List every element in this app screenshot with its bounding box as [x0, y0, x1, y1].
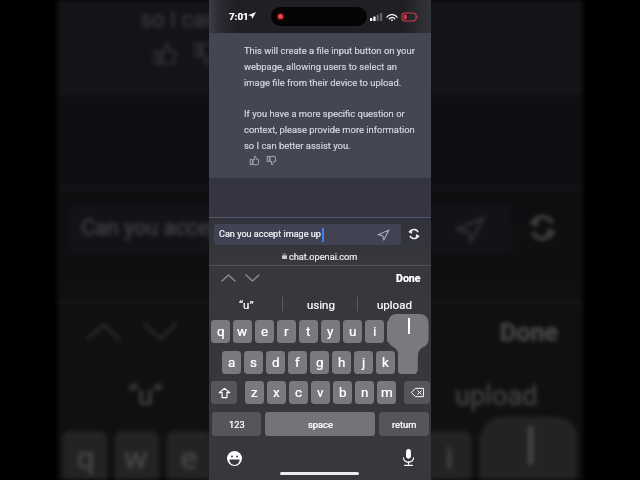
staticText: Can you accept image up	[81, 216, 322, 242]
button[interactable]: using	[247, 360, 398, 429]
button[interactable]: Shift	[211, 381, 237, 404]
staticText: i	[445, 441, 455, 478]
button[interactable]: Dictation	[398, 447, 418, 467]
button[interactable]: Thumbs up	[246, 152, 262, 168]
button[interactable]: m	[377, 381, 396, 404]
button[interactable]: p	[409, 320, 428, 343]
staticText: space	[308, 419, 333, 430]
button[interactable]: “u”	[214, 290, 278, 319]
button[interactable]: h	[332, 351, 351, 374]
staticText: a	[228, 355, 236, 371]
button[interactable]: c	[289, 381, 308, 404]
button[interactable]: g	[310, 351, 329, 374]
button[interactable]: u	[374, 431, 419, 480]
button[interactable]: r	[277, 320, 296, 343]
button[interactable]: space	[265, 412, 375, 436]
button[interactable]: t	[270, 431, 315, 480]
button[interactable]: Reload page	[516, 202, 569, 254]
staticText: z	[251, 385, 258, 401]
staticText: y	[327, 324, 334, 340]
button[interactable]: k	[376, 351, 395, 374]
staticText: return	[392, 419, 417, 430]
button[interactable]: Reload page	[403, 223, 425, 245]
button[interactable]: “u”	[69, 360, 221, 429]
staticText: h	[338, 355, 346, 371]
button[interactable]: v	[311, 381, 330, 404]
staticText: w	[124, 441, 150, 478]
button[interactable]: e	[166, 431, 211, 480]
staticText: webpage, allowing users to select an	[244, 61, 398, 72]
button[interactable]: Done	[390, 266, 426, 289]
staticText: g	[316, 355, 324, 371]
button[interactable]: e	[255, 320, 274, 343]
button[interactable]: i	[427, 431, 472, 480]
button[interactable]: w	[233, 320, 252, 343]
button[interactable]: j	[354, 351, 373, 374]
staticText: q	[217, 324, 225, 340]
button[interactable]: Next field	[239, 267, 265, 288]
button[interactable]: upload	[362, 290, 426, 319]
staticText: chat.openai.com	[289, 251, 358, 262]
button[interactable]: o	[479, 412, 580, 480]
button[interactable]: o	[387, 312, 430, 375]
staticText: q	[76, 441, 95, 478]
staticText: t	[287, 441, 299, 478]
staticText: v	[317, 385, 324, 401]
staticText: b	[339, 385, 347, 401]
button[interactable]: Next field	[128, 306, 190, 355]
staticText: This will create a file input button on …	[244, 45, 415, 56]
button[interactable]: t	[299, 320, 318, 343]
staticText: m	[381, 385, 393, 401]
button[interactable]: Previous field	[215, 267, 241, 288]
button[interactable]: z	[245, 381, 264, 404]
button[interactable]: Emoji keyboard	[225, 449, 243, 467]
button[interactable]: p	[531, 431, 576, 480]
staticText: so I can better assist you.	[244, 140, 351, 151]
button[interactable]: x	[267, 381, 286, 404]
button[interactable]: Can you accept image up	[214, 224, 401, 245]
button[interactable]: b	[333, 381, 352, 404]
button[interactable]: upload	[419, 360, 571, 429]
button[interactable]: Backspace	[404, 381, 430, 404]
button[interactable]: w	[114, 431, 159, 480]
button[interactable]: o	[387, 320, 406, 343]
button[interactable]: y	[321, 320, 340, 343]
button[interactable]: a	[222, 351, 241, 374]
button[interactable]: s	[244, 351, 263, 374]
button[interactable]: Thumbs down	[263, 152, 279, 168]
button[interactable]: q	[62, 431, 107, 480]
staticText: image file from their device to upload.	[244, 77, 402, 88]
button[interactable]: r	[218, 431, 263, 480]
staticText: y	[337, 441, 353, 478]
button[interactable]: Thumbs up	[145, 34, 183, 71]
button[interactable]: i	[365, 320, 384, 343]
button[interactable]: Done	[486, 303, 571, 358]
staticText: so I can better assist you.	[140, 5, 393, 31]
button[interactable]: 123	[212, 412, 261, 436]
staticText: If you have a more specific question or	[244, 108, 405, 119]
button[interactable]: y	[322, 431, 367, 480]
button[interactable]: f	[288, 351, 307, 374]
button[interactable]: d	[266, 351, 285, 374]
button[interactable]: l	[398, 351, 417, 374]
button[interactable]: Can you accept image up	[69, 204, 512, 254]
staticText: r	[235, 441, 247, 478]
staticText: chat.openai.com	[247, 268, 410, 294]
staticText: t	[306, 324, 311, 340]
staticText: c	[295, 385, 303, 401]
staticText: d	[272, 355, 280, 371]
button[interactable]: Previous field	[72, 306, 133, 355]
staticText: w	[237, 324, 248, 340]
button[interactable]: n	[355, 381, 374, 404]
button[interactable]: q	[211, 320, 230, 343]
button[interactable]: Thumbs down	[185, 34, 223, 71]
button[interactable]: return	[379, 412, 429, 436]
button[interactable]: u	[343, 320, 362, 343]
staticText: “u”	[239, 298, 254, 311]
button[interactable]: using	[289, 290, 353, 319]
